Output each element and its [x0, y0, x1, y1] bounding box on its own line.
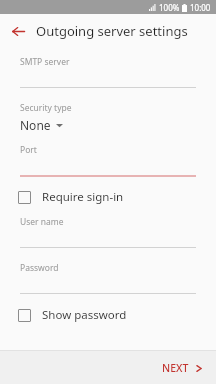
staticText: Security type	[20, 102, 72, 114]
staticText: None	[20, 117, 51, 133]
staticText: 100%	[159, 2, 180, 13]
staticText: Require sign-in	[42, 189, 124, 205]
button[interactable]: Show password	[0, 303, 216, 327]
button[interactable]: Require sign-in	[0, 185, 216, 209]
staticText: NEXT	[162, 361, 189, 375]
staticText: Outgoing server settings	[36, 22, 188, 40]
staticText: Show password	[42, 307, 127, 323]
staticText: Port	[20, 144, 37, 156]
staticText: User name	[20, 216, 64, 228]
button[interactable]: NEXT	[156, 355, 208, 381]
staticText: Password	[20, 262, 59, 274]
button[interactable]: None	[0, 116, 216, 134]
staticText: SMTP server	[20, 56, 70, 68]
button[interactable]: Navigate up	[7, 20, 29, 42]
staticText: 10:00	[190, 2, 211, 13]
